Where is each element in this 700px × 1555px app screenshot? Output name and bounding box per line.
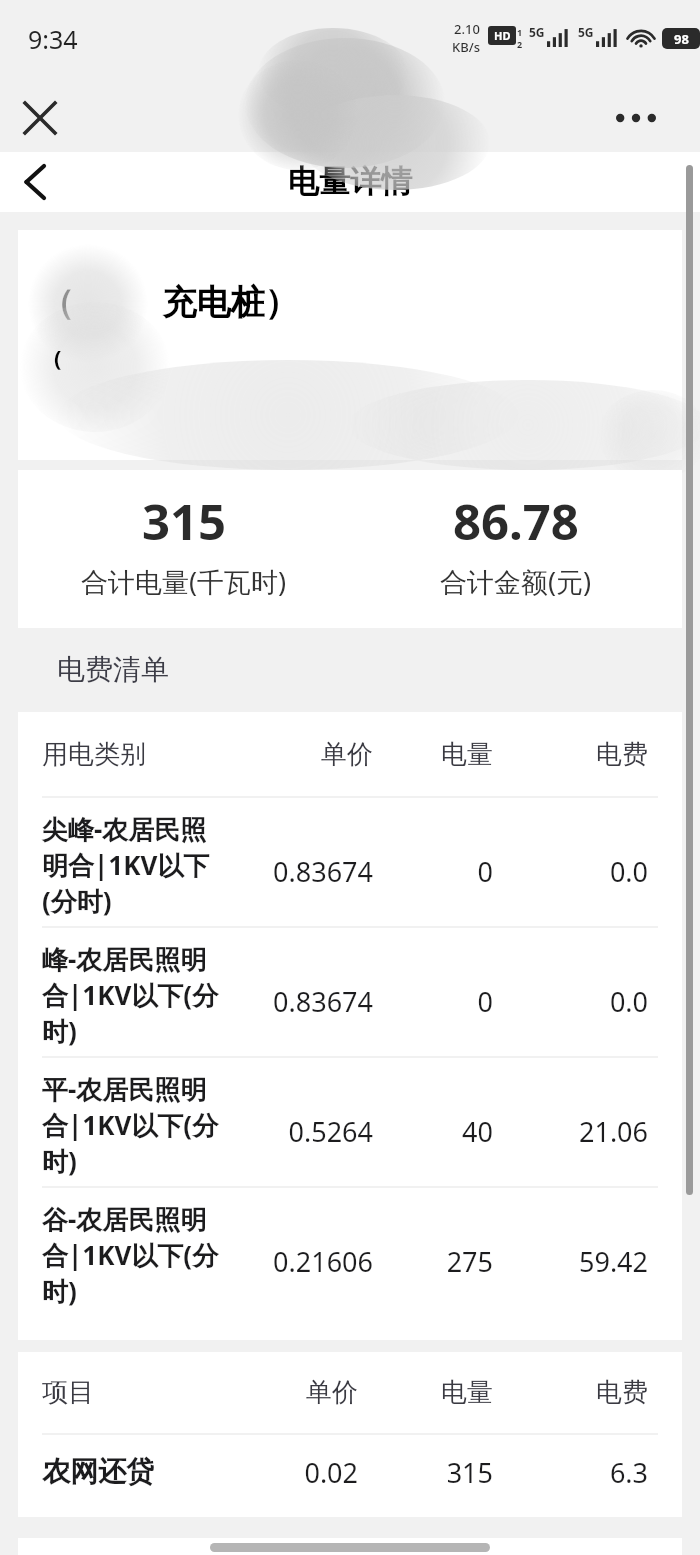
staticText: ( [54,342,62,372]
staticText: 0.02 [158,1454,358,1491]
staticText: 时) [42,1013,77,1049]
button[interactable]: 平-农居民照明 [18,1057,682,1187]
staticText: (分时) [42,883,112,919]
staticText: 电量 [293,1376,493,1409]
staticText: 电费 [448,738,648,771]
staticText: 0 [293,983,493,1020]
button[interactable]: 尖峰-农居民照 [18,797,682,927]
staticText: 0 [293,853,493,890]
staticText: 59.42 [448,1243,648,1280]
staticText: 21.06 [448,1113,648,1150]
staticText: 0.21606 [173,1243,373,1280]
staticText: 0.0 [448,853,648,890]
button[interactable]: Back [6,154,62,210]
staticText: HD [494,28,511,43]
staticText: （ 充电桩） [40,278,299,324]
staticText: 0.5264 [173,1113,373,1150]
staticText: 电费清单 [57,652,169,687]
button[interactable]: Close [12,90,68,146]
staticText: 峰-农居民照明 [42,941,207,977]
staticText: 单价 [173,738,373,771]
staticText: 电费 [448,1376,648,1409]
staticText: 合计金额(元) [440,563,592,600]
staticText: 合|1KV以下(分 [42,1107,219,1143]
staticText: 时) [42,1143,77,1179]
button[interactable]: More options [608,90,664,146]
button[interactable]: 峰-农居民照明 [18,927,682,1057]
button[interactable]: 农网还贷 [18,1434,682,1517]
staticText: 谷-农居民照明 [42,1201,207,1237]
staticText: 2.10 [454,20,480,38]
staticText: 5G [529,24,545,40]
staticText: 平-农居民照明 [42,1071,207,1107]
staticText: 合计电量(千瓦时) [81,563,287,600]
staticText: 98 [674,30,689,48]
staticText: 9:34 [28,22,78,56]
staticText: 项目 [42,1376,94,1409]
staticText: 86.78 [453,488,579,555]
staticText: 0.83674 [173,853,373,890]
staticText: 0.0 [448,983,648,1020]
staticText: 315 [293,1454,493,1491]
staticText: 时) [42,1273,77,1309]
staticText: 电量 [293,738,493,771]
staticText: 合|1KV以下(分 [42,1237,219,1273]
staticText: 5G [578,24,594,40]
staticText: 6.3 [448,1454,648,1491]
staticText: KB/s [452,38,481,56]
staticText: 农网还贷 [42,1454,154,1489]
staticText: 315 [142,488,227,555]
staticText: 2 [517,38,523,50]
staticText: 明合|1KV以下 [42,847,210,883]
staticText: 40 [293,1113,493,1150]
staticText: 0.83674 [173,983,373,1020]
button[interactable]: 谷-农居民照明 [18,1187,682,1317]
staticText: 尖峰-农居民照 [42,811,207,847]
staticText: 合|1KV以下(分 [42,977,219,1013]
staticText: 1 [517,26,523,38]
staticText: 单价 [158,1376,358,1409]
staticText: 275 [293,1243,493,1280]
staticText: 用电类别 [42,738,146,771]
staticText: 电量详情 [288,162,412,201]
